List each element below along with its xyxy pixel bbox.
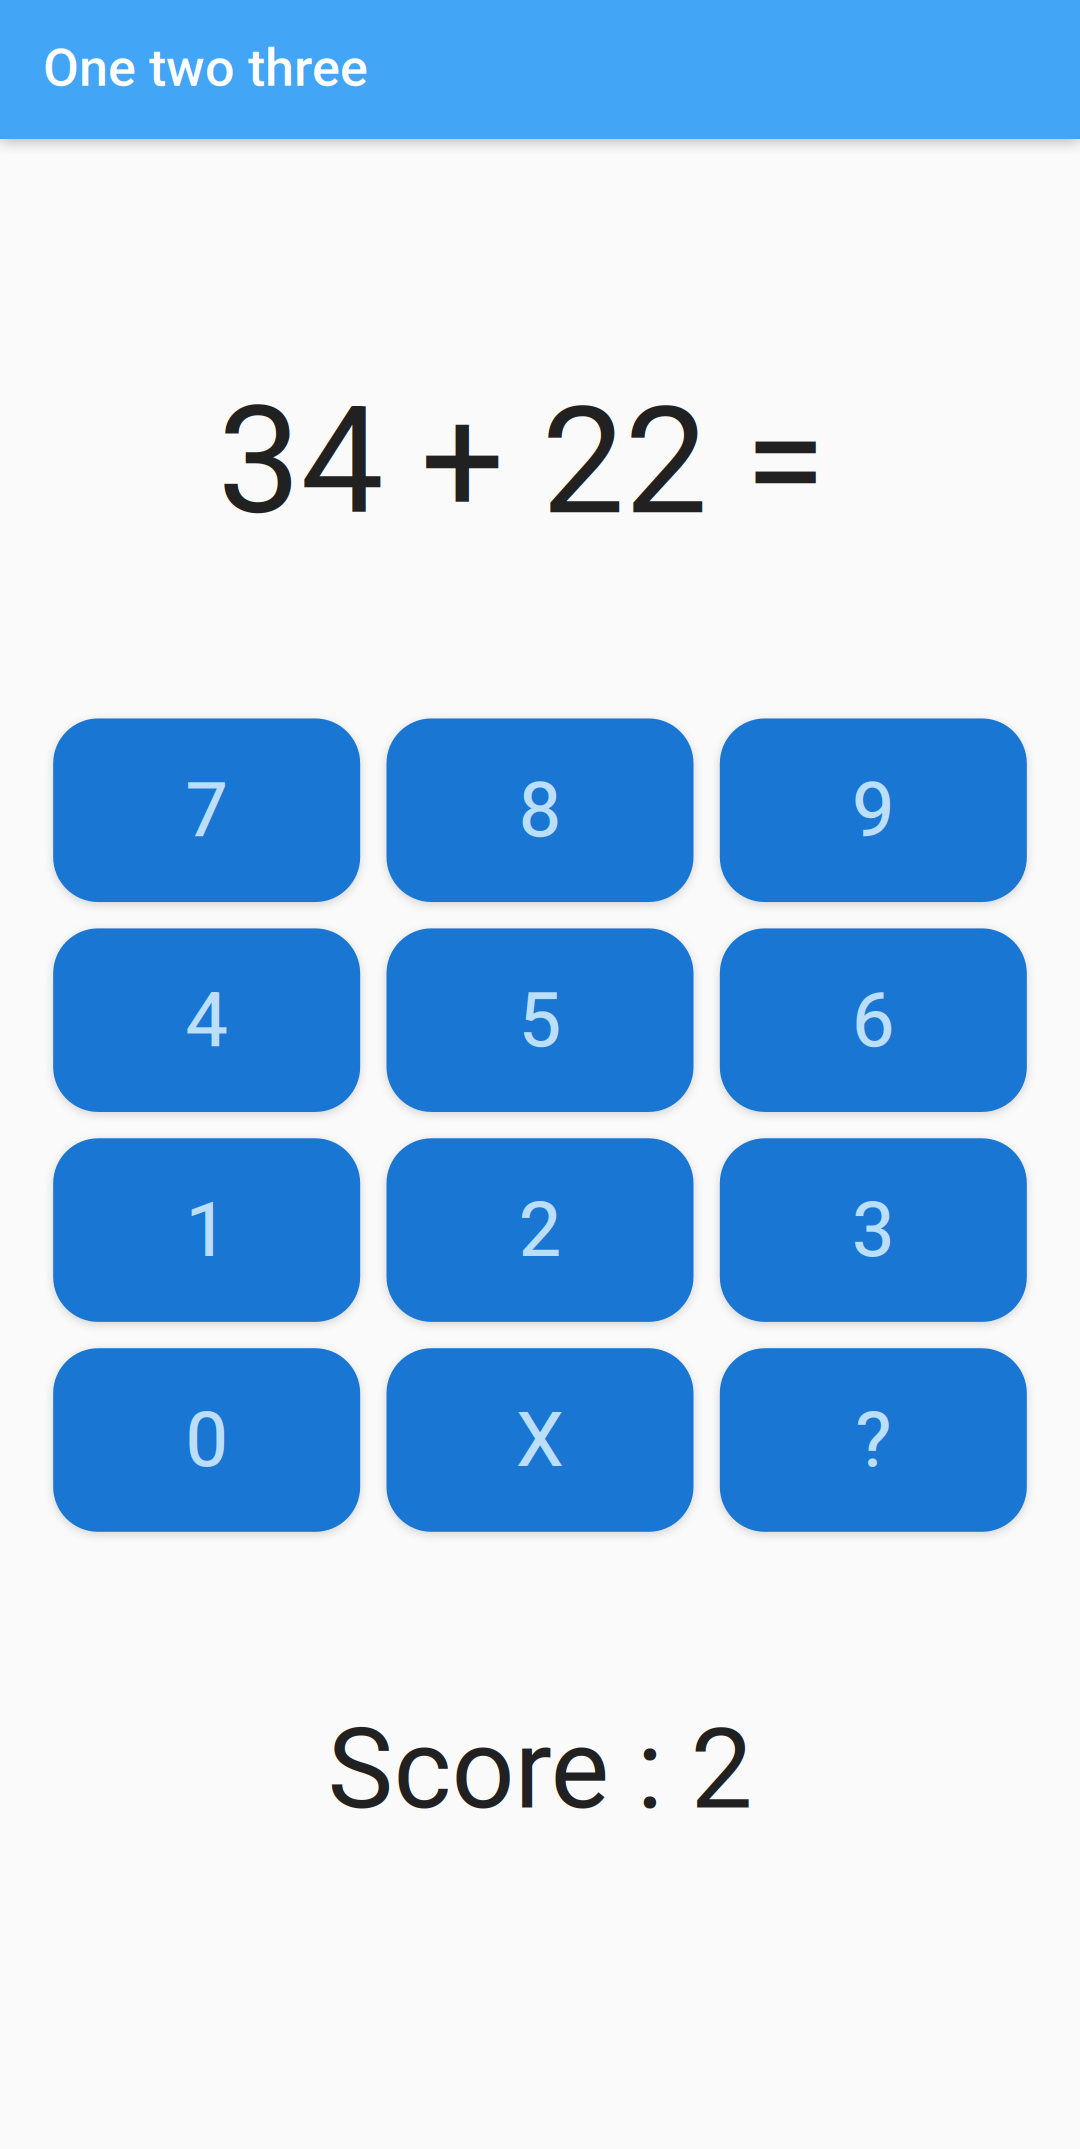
button[interactable]: 6: [720, 928, 1027, 1112]
button[interactable]: 4: [53, 928, 360, 1112]
staticText: 7: [185, 766, 228, 855]
button[interactable]: 8: [386, 718, 693, 902]
button[interactable]: 2: [386, 1138, 693, 1322]
staticText: Score : 2: [327, 1705, 752, 1834]
button[interactable]: 3: [720, 1138, 1027, 1322]
staticText: 9: [852, 766, 895, 855]
button[interactable]: 5: [386, 928, 693, 1112]
button[interactable]: Clear: [386, 1348, 693, 1532]
button[interactable]: 0: [53, 1348, 360, 1532]
staticText: 34 + 22 =: [217, 375, 862, 548]
button[interactable]: 7: [53, 718, 360, 902]
button[interactable]: Hint: [720, 1348, 1027, 1532]
button[interactable]: 1: [53, 1138, 360, 1322]
staticText: 5: [518, 976, 561, 1065]
button[interactable]: 9: [720, 718, 1027, 902]
staticText: 6: [852, 976, 895, 1065]
staticText: 1: [185, 1186, 228, 1275]
staticText: X: [516, 1395, 564, 1485]
staticText: 0: [185, 1395, 228, 1485]
staticText: ?: [855, 1395, 891, 1485]
staticText: 8: [518, 766, 561, 855]
staticText: One two three: [43, 37, 368, 98]
staticText: 4: [185, 976, 228, 1065]
staticText: 3: [852, 1186, 895, 1275]
staticText: 2: [518, 1186, 561, 1275]
